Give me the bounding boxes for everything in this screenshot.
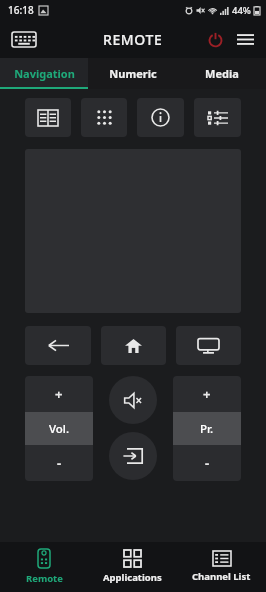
button[interactable]: Media [177,58,266,89]
staticText: - [205,454,210,472]
button[interactable]: Home [101,326,166,365]
button[interactable]: Mute [109,376,157,424]
staticText: Channel List [192,570,251,583]
button[interactable]: Keypad [81,98,127,137]
button[interactable]: + [25,376,93,412]
staticText: + [55,385,63,403]
button[interactable]: Info [137,98,184,137]
staticText: Vol. [49,421,70,437]
staticText: Remote [26,572,63,585]
staticText: Numeric [109,66,157,81]
staticText: Navigation [14,66,75,81]
button[interactable]: Input source [109,432,157,480]
staticText: Media [205,66,239,81]
button[interactable]: Back [25,326,91,365]
button[interactable]: Settings [194,98,241,137]
button[interactable]: Pr. [173,412,241,445]
button[interactable]: Source [176,326,241,365]
button[interactable]: Channel List [177,542,266,592]
button[interactable]: - [25,445,93,481]
button[interactable]: - [173,445,241,481]
staticText: - [57,454,62,472]
staticText: 16:18 [8,3,34,17]
button[interactable]: Keyboard [6,21,42,57]
staticText: Applications [103,571,162,584]
button[interactable]: Applications [88,542,177,592]
staticText: 44% [232,4,251,17]
button[interactable]: Guide [25,98,71,137]
staticText: REMOTE [103,30,163,49]
button[interactable]: Navigation [0,58,88,89]
staticText: Pr. [200,421,214,437]
button[interactable]: Power [200,24,230,54]
button[interactable]: Vol. [25,412,93,445]
staticText: + [203,385,211,403]
button[interactable]: Menu [230,24,260,54]
button[interactable]: + [173,376,241,412]
button[interactable]: Numeric [88,58,177,89]
button[interactable]: Remote [0,542,88,592]
